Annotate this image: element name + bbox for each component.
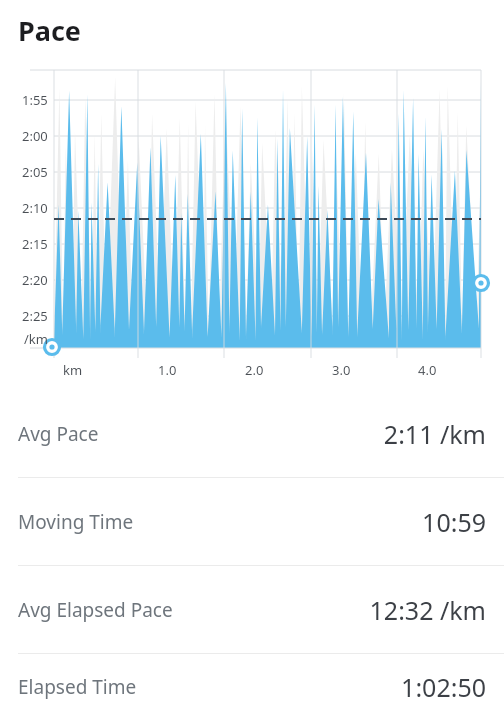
button[interactable]: Avg Pace (0, 390, 504, 477)
staticText: 3.0 (332, 361, 351, 379)
staticText: 2:25 (22, 307, 48, 325)
staticText: 1:02:50 (401, 670, 486, 704)
staticText: 2:11 /km (383, 417, 486, 451)
staticText: /km (24, 330, 48, 348)
staticText: 2:00 (22, 127, 48, 145)
staticText: 2:20 (22, 271, 48, 289)
button[interactable]: Moving Time (0, 477, 504, 565)
button[interactable]: Elapsed Time (0, 653, 504, 720)
staticText: 1.0 (158, 361, 177, 379)
staticText: km (63, 361, 83, 379)
staticText: 2:05 (22, 163, 48, 181)
staticText: Moving Time (18, 509, 134, 535)
staticText: Pace (18, 12, 81, 49)
button[interactable]: Pace chart (0, 60, 504, 390)
staticText: Avg Elapsed Pace (18, 597, 173, 623)
staticText: 10:59 (422, 505, 486, 539)
staticText: Elapsed Time (18, 674, 137, 700)
staticText: 1:55 (22, 91, 48, 109)
staticText: Avg Pace (18, 421, 99, 447)
staticText: 12:32 /km (369, 593, 486, 627)
button[interactable]: Avg Elapsed Pace (0, 565, 504, 653)
staticText: 4.0 (418, 361, 437, 379)
staticText: 2.0 (245, 361, 264, 379)
staticText: 2:10 (22, 199, 48, 217)
staticText: 2:15 (22, 235, 48, 253)
